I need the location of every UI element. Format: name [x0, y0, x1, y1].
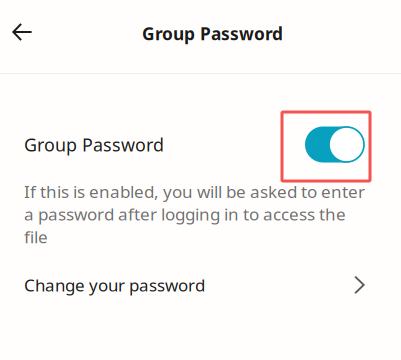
staticText: If this is enabled, you will be asked to… [24, 180, 365, 248]
staticText: Group Password [24, 133, 164, 156]
button[interactable]: Back [0, 10, 44, 54]
staticText: Group Password [142, 22, 283, 45]
button[interactable]: Change your password [24, 266, 365, 304]
button[interactable]: Group Password [24, 126, 364, 163]
staticText: Change your password [24, 274, 205, 296]
